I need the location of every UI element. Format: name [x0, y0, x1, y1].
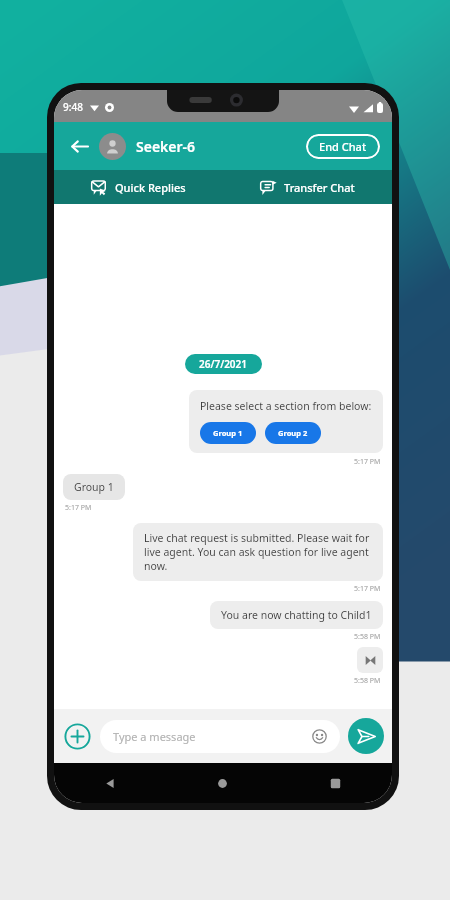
staticText: Live chat request is submitted. Please w… [144, 531, 372, 573]
staticText: Group 1 [74, 480, 114, 494]
button[interactable]: Type a message [100, 720, 340, 753]
button[interactable]: Home [166, 763, 279, 803]
button[interactable]: Recent apps [279, 763, 392, 803]
button[interactable]: Back [54, 763, 166, 803]
staticText: 5:17 PM [354, 584, 381, 594]
staticText: 26/7/2021 [199, 357, 248, 371]
staticText: 5:17 PM [65, 503, 92, 513]
staticText: 5:17 PM [354, 457, 381, 467]
button[interactable]: End Chat [306, 134, 380, 159]
button[interactable]: Send [348, 718, 384, 754]
staticText: Quick Replies [115, 180, 186, 195]
staticText: Transfer Chat [284, 180, 355, 195]
staticText: Group 1 [213, 428, 243, 438]
staticText: 9:48 [63, 100, 83, 114]
staticText: Please select a section from below: [200, 399, 372, 413]
button[interactable]: Add attachment [62, 721, 92, 751]
staticText: 5:58 PM [354, 676, 381, 686]
staticText: Group 2 [278, 428, 308, 438]
button[interactable]: Group 2 [265, 422, 321, 444]
button[interactable]: Group 1 [200, 422, 256, 444]
staticText: You are now chatting to Child1 [221, 608, 372, 622]
button[interactable]: Transfer Chat [223, 170, 392, 204]
staticText: End Chat [319, 139, 367, 154]
staticText: 5:58 PM [354, 632, 381, 642]
staticText: Seeker-6 [136, 137, 196, 156]
button[interactable]: Back [66, 133, 92, 159]
staticText: Type a message [113, 729, 196, 744]
button[interactable]: Quick Replies [54, 170, 223, 204]
